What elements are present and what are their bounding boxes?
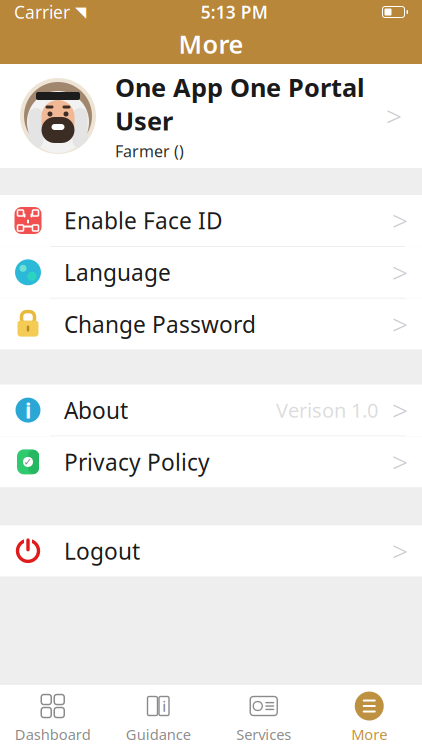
staticText: Logout: [64, 536, 140, 566]
button[interactable]: i: [0, 385, 422, 436]
button[interactable]: Dashboard: [0, 684, 105, 750]
staticText: >: [392, 391, 408, 429]
staticText: Language: [64, 257, 171, 287]
staticText: Farmer (): [115, 140, 184, 162]
staticText: More: [351, 724, 387, 744]
staticText: Privacy Policy: [64, 447, 210, 477]
staticText: i: [25, 396, 31, 424]
staticText: Dashboard: [15, 724, 91, 744]
button[interactable]: More: [316, 684, 422, 750]
staticText: 5:13 PM: [201, 0, 268, 23]
staticText: Enable Face ID: [64, 205, 223, 235]
button[interactable]: Enable Face ID: [0, 195, 422, 247]
staticText: More: [178, 27, 243, 61]
staticText: ◥: [75, 4, 86, 20]
staticText: Services: [236, 724, 291, 744]
button[interactable]: Language: [0, 247, 422, 299]
button[interactable]: ✓: [0, 436, 422, 487]
button[interactable]: i: [105, 684, 211, 750]
staticText: Verison 1.0: [276, 397, 378, 423]
staticText: Change Password: [64, 309, 256, 339]
staticText: One App One Portal User: [115, 70, 365, 137]
staticText: Carrier: [14, 0, 70, 23]
staticText: >: [392, 202, 408, 239]
staticText: About: [64, 395, 128, 425]
button[interactable]: Logout: [0, 525, 422, 576]
staticText: >: [392, 254, 408, 291]
button[interactable]: One App One Portal User: [0, 64, 422, 168]
staticText: >: [386, 97, 402, 135]
staticText: >: [392, 443, 408, 480]
staticText: >: [392, 532, 408, 569]
staticText: ✓: [23, 456, 32, 468]
staticText: Guidance: [126, 724, 191, 744]
button[interactable]: Services: [211, 684, 316, 750]
staticText: i: [162, 696, 166, 716]
staticText: >: [392, 305, 408, 343]
button[interactable]: Change Password: [0, 299, 422, 350]
